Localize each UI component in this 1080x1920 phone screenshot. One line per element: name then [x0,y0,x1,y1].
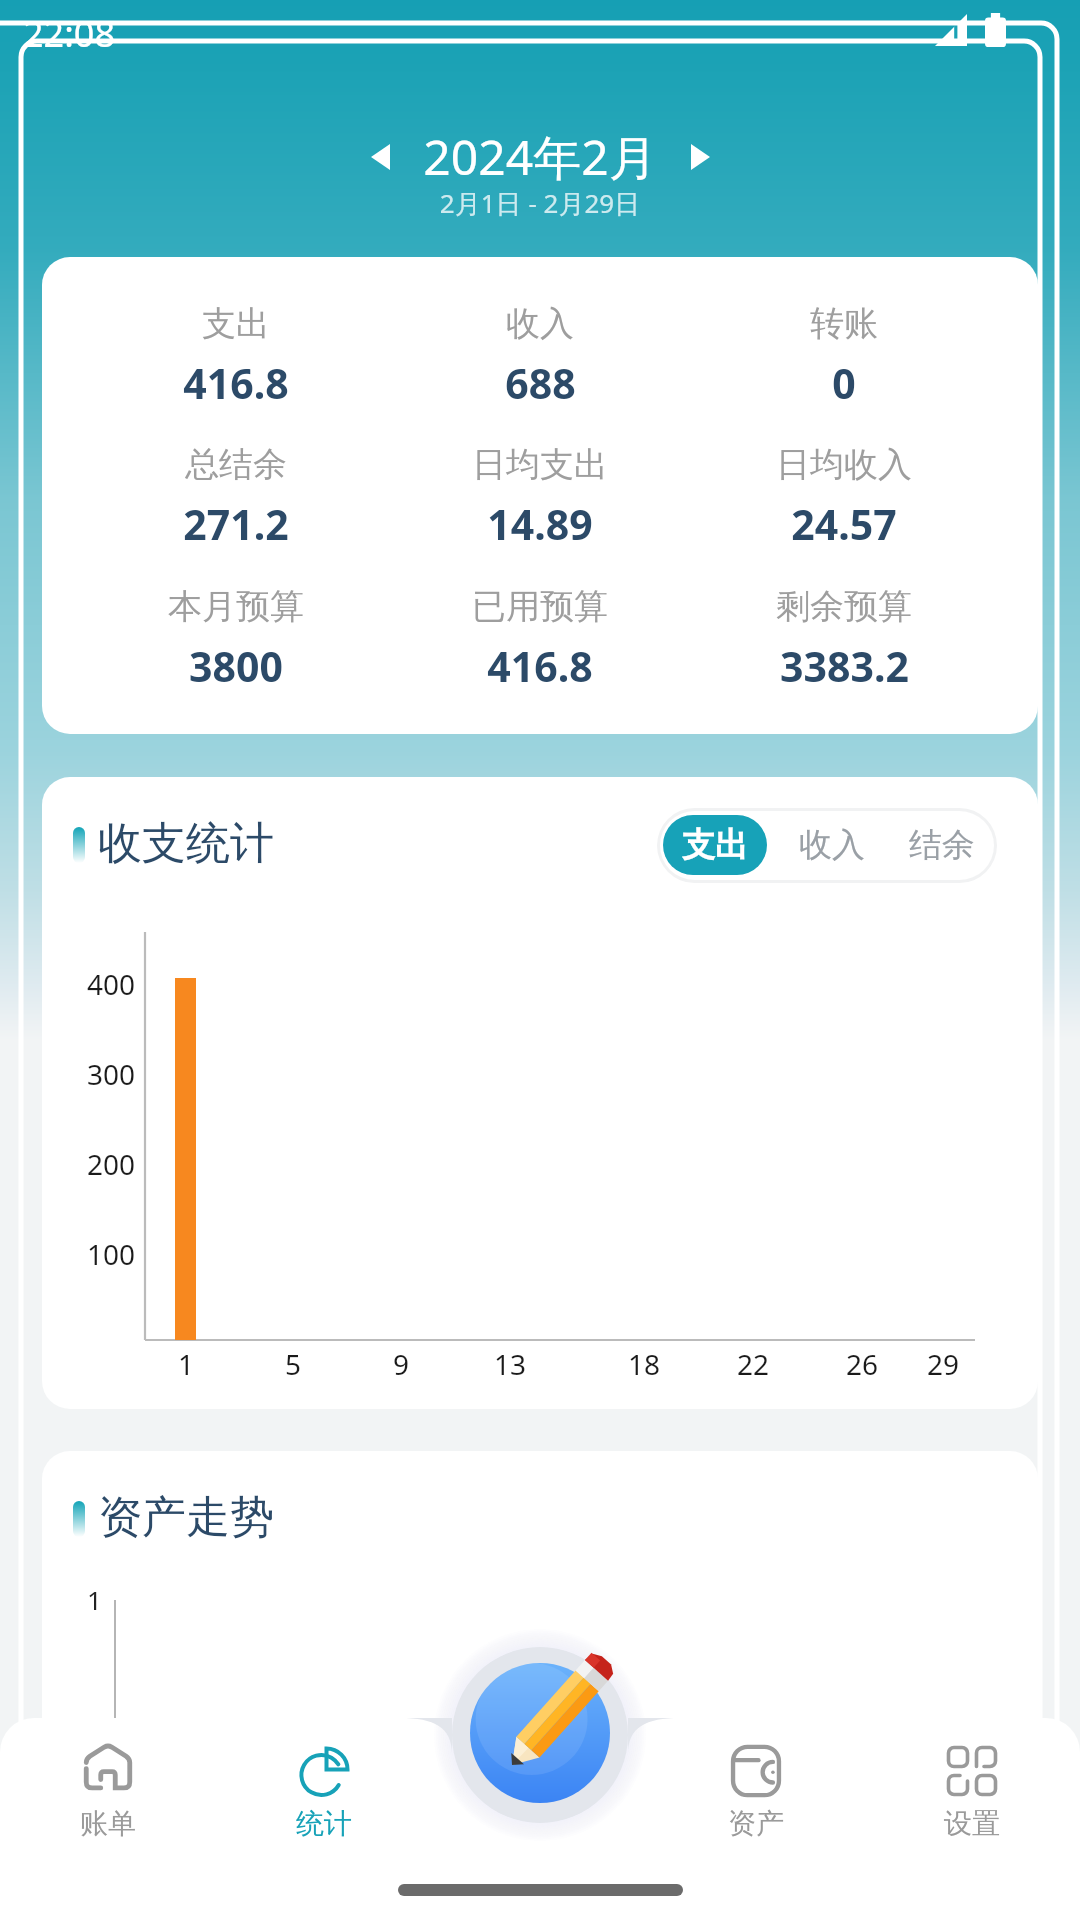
staticText: 收入 [506,302,574,345]
staticText: 日均支出 [472,443,608,486]
button[interactable]: Previous month [350,127,410,187]
staticText: 24.57 [791,496,897,552]
staticText: 3800 [189,638,283,694]
staticText: 271.2 [183,496,289,552]
staticText: 剩余预算 [776,585,912,628]
staticText: 1 [87,1582,102,1617]
staticText: 已用预算 [472,585,608,628]
staticText: 29 [913,1345,973,1383]
staticText: 22:08 [23,9,116,58]
staticText: 账单 [80,1806,136,1841]
button[interactable]: Add record [470,1663,610,1803]
staticText: 1 [156,1345,216,1383]
staticText: 400 [75,965,135,1003]
staticText: 13 [480,1345,540,1383]
staticText: 本月预算 [168,585,304,628]
staticText: 416.8 [487,638,593,694]
staticText: 3383.2 [780,638,909,694]
staticText: 统计 [296,1806,352,1841]
button[interactable]: 账单 [0,1718,216,1841]
staticText: 资产走势 [98,1490,274,1545]
staticText: 300 [75,1055,135,1093]
staticText: 转账 [810,302,878,345]
staticText: 总结余 [185,443,287,486]
button[interactable]: 设置 [864,1718,1080,1841]
button[interactable]: 资产 [648,1718,864,1841]
staticText: 100 [75,1235,135,1273]
staticText: 支出 [202,302,270,345]
button[interactable]: 结余 [890,815,994,875]
staticText: 5 [263,1345,323,1383]
staticText: 14.89 [487,496,593,552]
staticText: 26 [832,1345,892,1383]
button[interactable]: 收入 [780,815,884,875]
staticText: 9 [371,1345,431,1383]
staticText: 22 [723,1345,783,1383]
staticText: 0 [832,355,856,411]
button[interactable]: Next month [670,127,730,187]
button[interactable]: 统计 [216,1718,432,1841]
staticText: 2024年2月 [423,124,657,190]
staticText: 收入 [799,824,865,866]
staticText: 收支统计 [98,816,274,871]
staticText: 200 [75,1145,135,1183]
staticText: 结余 [909,824,975,866]
staticText: 日均收入 [776,443,912,486]
staticText: 支出 [682,824,748,866]
staticText: 416.8 [183,355,289,411]
staticText: 18 [614,1345,674,1383]
staticText: 2月1日 - 2月29日 [0,185,1080,221]
button[interactable]: 支出 [663,815,767,875]
staticText: 资产 [728,1806,784,1841]
staticText: 688 [505,355,576,411]
staticText: 设置 [944,1806,1000,1841]
